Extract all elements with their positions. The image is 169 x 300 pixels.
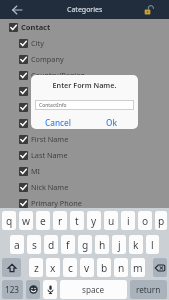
button[interactable]: First Name: [19, 131, 169, 147]
staticText: Department: [31, 86, 73, 96]
button[interactable]: n: [114, 258, 128, 277]
button[interactable]: Ok: [84, 115, 138, 129]
staticText: MI: [31, 166, 41, 176]
staticText: Company: [31, 54, 64, 64]
button[interactable]: o: [138, 211, 152, 230]
button[interactable]: r: [53, 211, 67, 230]
button[interactable]: Shift: [2, 258, 21, 277]
button[interactable]: c: [63, 258, 77, 277]
staticText: v: [84, 261, 90, 275]
staticText: o: [142, 214, 149, 228]
button[interactable]: k: [129, 235, 143, 254]
staticText: s: [32, 238, 37, 252]
staticText: x: [50, 261, 56, 275]
button[interactable]: Department: [19, 83, 169, 99]
staticText: k: [133, 238, 139, 252]
button[interactable]: z: [29, 258, 43, 277]
staticText: h: [99, 238, 106, 252]
button[interactable]: x: [46, 258, 60, 277]
staticText: y: [91, 214, 97, 228]
button[interactable]: Unlock: [141, 2, 157, 18]
staticText: Contact: [21, 22, 51, 32]
button[interactable]: Country/Region: [19, 67, 169, 83]
button[interactable]: space: [60, 280, 127, 299]
button[interactable]: Emoji: [26, 280, 40, 299]
button[interactable]: Back: [9, 2, 25, 18]
button[interactable]: Last Name: [19, 147, 169, 163]
button[interactable]: s: [27, 235, 41, 254]
button[interactable]: 123: [2, 280, 23, 299]
button[interactable]: j: [112, 235, 126, 254]
staticText: g: [82, 238, 89, 252]
staticText: q: [6, 214, 13, 228]
button[interactable]: f: [61, 235, 75, 254]
staticText: return: [136, 284, 161, 295]
button[interactable]: i: [121, 211, 135, 230]
button[interactable]: Cancel: [31, 115, 84, 129]
button[interactable]: Company: [19, 51, 169, 67]
staticText: Last Name: [31, 150, 68, 160]
button[interactable]: q: [2, 211, 16, 230]
button[interactable]: g: [78, 235, 92, 254]
button[interactable]: Voice input: [43, 280, 57, 299]
staticText: t: [75, 214, 79, 228]
staticText: space: [82, 284, 105, 295]
staticText: m: [133, 261, 143, 275]
button[interactable]: m: [131, 258, 145, 277]
button[interactable]: t: [70, 211, 84, 230]
staticText: z: [34, 261, 39, 275]
button[interactable]: y: [87, 211, 101, 230]
button[interactable]: d: [44, 235, 58, 254]
button[interactable]: v: [80, 258, 94, 277]
staticText: City: [31, 38, 44, 48]
staticText: n: [118, 261, 125, 275]
staticText: Cancel: [45, 117, 71, 128]
staticText: Enter Form Name.: [31, 80, 138, 90]
staticText: c: [68, 261, 73, 275]
button[interactable]: w: [19, 211, 33, 230]
staticText: i: [127, 214, 130, 228]
button[interactable]: MI: [19, 163, 169, 179]
button[interactable]: Primary Phone: [19, 195, 169, 211]
button[interactable]: Nick Name: [19, 179, 169, 195]
button[interactable]: l: [146, 235, 159, 254]
staticText: Primary Phone: [31, 198, 82, 208]
button[interactable]: u: [104, 211, 118, 230]
staticText: u: [108, 214, 115, 228]
button[interactable]: City: [19, 35, 169, 51]
button[interactable]: ContactInfo: [35, 100, 134, 110]
button[interactable]: e: [36, 211, 50, 230]
button[interactable]: Contact: [9, 19, 169, 35]
staticText: r: [58, 214, 63, 228]
button[interactable]: Email: [19, 99, 169, 115]
staticText: f: [66, 238, 70, 252]
staticText: Categories: [67, 5, 103, 15]
staticText: a: [14, 238, 20, 252]
staticText: First Name: [31, 134, 69, 144]
button[interactable]: a: [10, 235, 24, 254]
staticText: j: [118, 238, 121, 252]
staticText: b: [101, 261, 108, 275]
button[interactable]: h: [95, 235, 109, 254]
staticText: Ok: [106, 117, 117, 128]
button[interactable]: Backspace: [153, 258, 167, 277]
staticText: 123: [5, 284, 20, 295]
staticText: p: [158, 214, 165, 228]
button[interactable]: b: [97, 258, 111, 277]
staticText: l: [151, 238, 154, 252]
staticText: d: [48, 238, 55, 252]
staticText: Nick Name: [31, 182, 69, 192]
staticText: e: [40, 214, 46, 228]
staticText: ContactInfo: [39, 102, 67, 109]
button[interactable]: Fax: [19, 115, 169, 131]
button[interactable]: return: [130, 280, 167, 299]
button[interactable]: p: [155, 211, 167, 230]
staticText: Fax: [31, 118, 43, 128]
staticText: Email: [31, 102, 50, 112]
staticText: Country/Region: [31, 70, 86, 80]
staticText: w: [22, 214, 31, 228]
